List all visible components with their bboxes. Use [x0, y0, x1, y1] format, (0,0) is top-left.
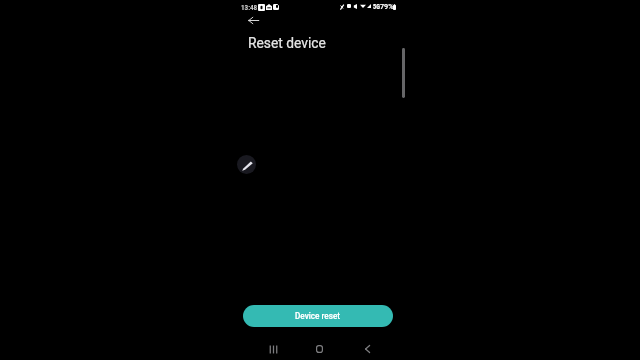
staticText: Reset device [248, 35, 326, 51]
button[interactable]: Navigate up [242, 9, 264, 31]
button[interactable]: Back [354, 336, 380, 360]
button[interactable]: Home [306, 336, 332, 360]
button[interactable]: Device reset [243, 305, 393, 327]
button[interactable]: Recents [260, 336, 286, 360]
staticText: 5G [373, 3, 380, 10]
staticText: 13:48 [241, 3, 258, 11]
staticText: Device reset [295, 311, 341, 321]
button[interactable]: Edit [237, 155, 256, 174]
staticText: 79% [380, 2, 394, 10]
